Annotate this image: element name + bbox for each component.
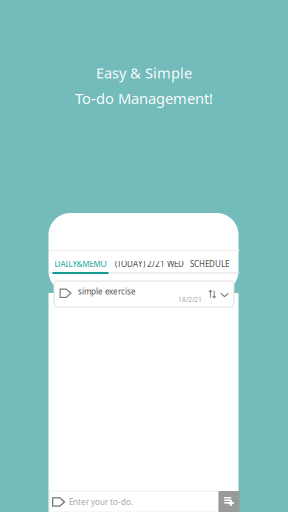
button[interactable]: Add to-do — [218, 491, 239, 512]
button[interactable]: simple exercise — [54, 281, 234, 307]
staticText: DAILY&MEMO — [54, 259, 106, 269]
staticText: (TODAY) 2/21 WED — [115, 259, 184, 269]
staticText: To-do Management! — [75, 88, 213, 108]
staticText: Easy & Simple — [96, 63, 192, 82]
button[interactable]: (TODAY) 2/21 WED — [114, 255, 184, 273]
button[interactable]: DAILY&MEMO — [52, 255, 108, 273]
button[interactable]: SCHEDULE — [189, 255, 229, 273]
staticText: Enter your to-do. — [69, 496, 133, 507]
staticText: SCHEDULE — [190, 259, 229, 269]
staticText: 18/2/21 — [178, 295, 202, 304]
staticText: simple exercise — [78, 286, 136, 297]
